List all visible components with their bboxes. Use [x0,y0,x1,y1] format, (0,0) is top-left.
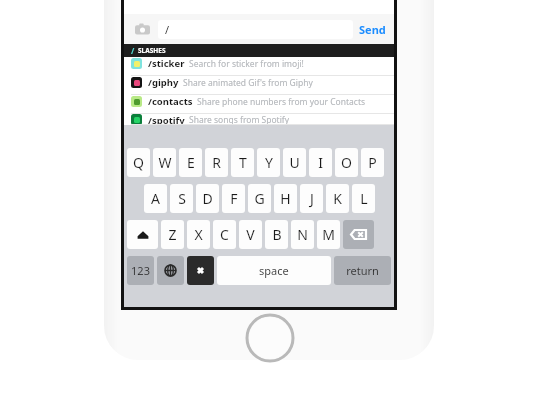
button[interactable]: U [283,148,306,177]
button[interactable]: space [217,256,331,285]
staticText: T [239,153,247,172]
button[interactable]: Y [257,148,280,177]
staticText: G [254,189,265,208]
button[interactable]: G [248,184,271,213]
staticText: Share phone numbers from your Contacts [197,96,366,108]
staticText: O [341,153,352,172]
button[interactable]: Backspace [343,220,374,249]
button[interactable]: J [300,184,323,213]
button[interactable]: /giphy [124,76,394,95]
staticText: J [310,189,314,208]
button[interactable]: B [265,220,288,249]
staticText: /spotify [148,114,185,125]
button[interactable]: return [334,256,391,285]
button[interactable]: W [153,148,176,177]
button[interactable]: /sticker [124,57,394,76]
button[interactable]: M [317,220,340,249]
staticText: C [220,225,229,244]
staticText: Share animated Gif's from Giphy [183,77,313,89]
staticText: E [187,153,195,172]
button[interactable]: T [231,148,254,177]
staticText: / [165,22,170,37]
staticText: N [297,225,308,244]
staticText: M [322,225,335,244]
staticText: H [280,189,291,208]
staticText: 123 [131,263,150,278]
button[interactable]: X [187,220,210,249]
button[interactable]: N [291,220,314,249]
staticText: U [289,153,300,172]
staticText: X [194,225,203,244]
staticText: Search for sticker from imoji! [189,58,304,70]
staticText: space [259,263,289,278]
button[interactable]: I [309,148,332,177]
staticText: W [158,153,172,172]
staticText: R [212,153,221,172]
staticText: SLASHES [138,46,166,55]
staticText: D [202,189,213,208]
button[interactable]: F [222,184,245,213]
staticText: Y [265,153,273,172]
staticText: /sticker [148,57,185,70]
staticText: V [246,225,255,244]
button[interactable]: H [274,184,297,213]
staticText: Q [133,153,144,172]
button[interactable]: Send [359,22,386,37]
staticText: A [151,189,160,208]
button[interactable]: Shift [127,220,158,249]
button[interactable]: A [144,184,167,213]
button[interactable]: S [170,184,193,213]
button[interactable]: O [335,148,358,177]
button[interactable]: Switch keyboard [157,256,184,285]
button[interactable]: /contacts [124,95,394,114]
button[interactable]: K [326,184,349,213]
staticText: I [318,153,323,172]
staticText: P [368,153,377,172]
button[interactable]: D [196,184,219,213]
staticText: Send [359,22,386,37]
staticText: Share songs from Spotify [189,114,290,125]
button[interactable]: Close [187,256,214,285]
staticText: / [131,45,135,56]
staticText: Z [168,225,177,244]
staticText: return [346,263,379,278]
button[interactable]: P [361,148,384,177]
button[interactable]: Camera [132,19,152,39]
button[interactable]: / [158,20,353,39]
button[interactable]: C [213,220,236,249]
button[interactable]: V [239,220,262,249]
button[interactable]: E [179,148,202,177]
button[interactable]: L [352,184,375,213]
staticText: B [272,225,282,244]
staticText: L [360,189,368,208]
button[interactable]: Q [127,148,150,177]
staticText: /giphy [148,76,179,89]
staticText: S [178,189,186,208]
button[interactable]: Z [161,220,184,249]
staticText: K [333,189,342,208]
button[interactable]: /spotify [124,114,394,125]
staticText: F [230,189,238,208]
button[interactable]: R [205,148,228,177]
button[interactable]: 123 [127,256,154,285]
staticText: /contacts [148,95,193,108]
